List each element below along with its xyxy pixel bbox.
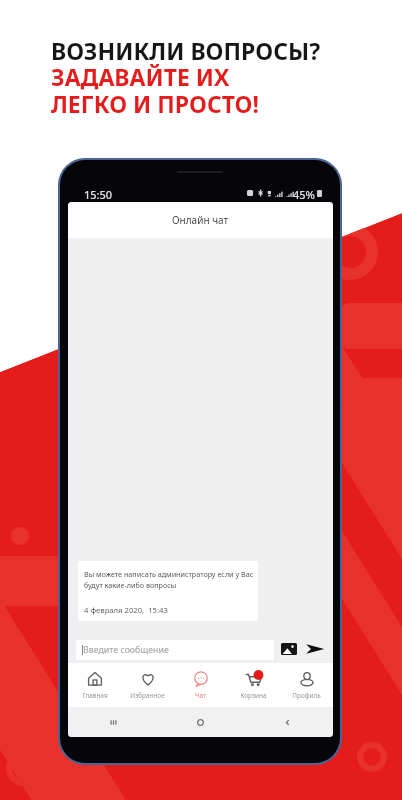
staticText: 45% [293,187,315,199]
button[interactable]: Избранное [121,663,174,700]
staticText: 15:50 [84,187,113,199]
button[interactable]: Send [305,641,325,657]
button[interactable]: Профиль [280,663,333,700]
button[interactable]: Введите сообщение [76,640,274,660]
button[interactable]: Attach image [281,641,297,657]
button[interactable]: Главная [68,663,121,700]
staticText: Чат [195,691,206,700]
button[interactable]: Корзина [227,663,280,700]
staticText: Введите сообщение [83,644,169,656]
button[interactable]: Чат [174,663,227,700]
staticText: Корзина [240,691,267,700]
staticText: 4 февраля 2020, 15:43 [84,605,168,615]
staticText: Профиль [292,691,321,700]
staticText: Избранное [130,691,165,700]
staticText: Вы можете написать администратору если у… [84,569,254,591]
staticText: Онлайн чат [172,213,229,227]
staticText: Главная [82,691,108,700]
staticText: ВОЗНИКЛИ ВОПРОСЫ? ЗАДАВАЙТЕ ИХ ЛЕГКО И П… [51,35,321,120]
